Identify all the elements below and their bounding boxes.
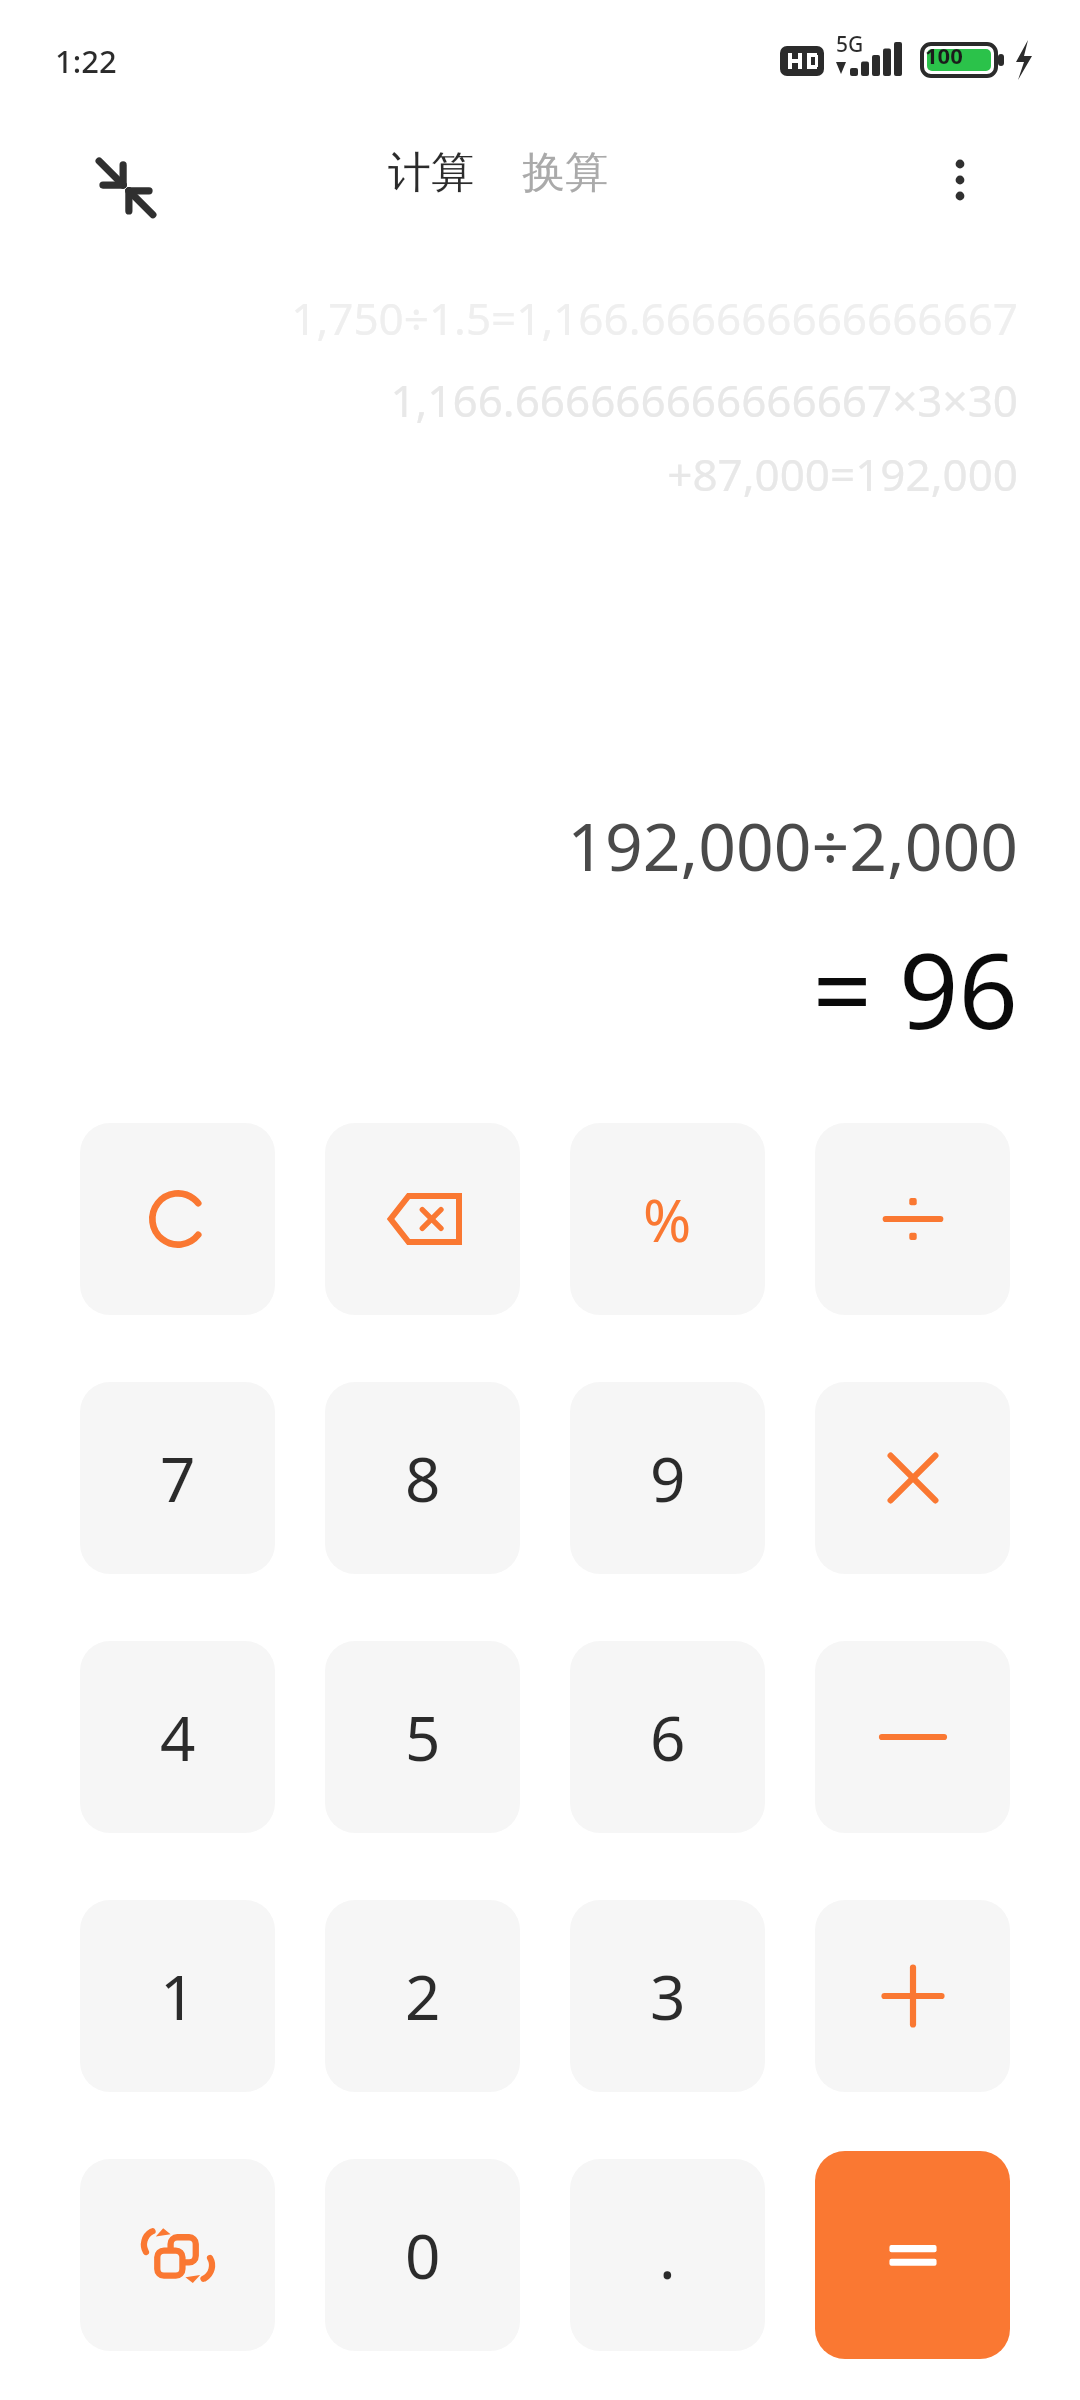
staticText: +87,000=192,000 <box>667 444 1018 504</box>
button[interactable]: 换算 <box>514 140 616 206</box>
button[interactable] <box>325 1123 520 1315</box>
staticText: 5G <box>836 30 864 59</box>
button[interactable]: Convert <box>80 2159 275 2351</box>
button[interactable]: 5 <box>325 1641 520 1833</box>
staticText: 7 <box>160 1436 196 1520</box>
staticText: 1:22 <box>55 40 117 82</box>
button[interactable]: 1 <box>80 1900 275 2092</box>
staticText: 8 <box>405 1436 441 1520</box>
button[interactable]: 4 <box>80 1641 275 1833</box>
staticText: 100 <box>925 40 963 70</box>
button[interactable]: More options <box>920 140 1000 220</box>
button[interactable]: Collapse <box>78 138 174 234</box>
staticText: % <box>643 1180 692 1259</box>
button[interactable]: 8 <box>325 1382 520 1574</box>
button[interactable] <box>815 1900 1010 2092</box>
button[interactable]: 计算 <box>380 140 482 206</box>
button[interactable]: . <box>570 2159 765 2351</box>
button[interactable]: 7 <box>80 1382 275 1574</box>
staticText: 1 <box>160 1954 196 2038</box>
staticText: 5 <box>405 1695 441 1779</box>
staticText: 1,166.666666666666667×3×30 <box>390 370 1018 430</box>
staticText: = 96 <box>812 918 1018 1060</box>
staticText: 0 <box>405 2213 441 2297</box>
button[interactable]: 2 <box>325 1900 520 2092</box>
button[interactable] <box>815 1382 1010 1574</box>
staticText: 换算 <box>522 146 608 200</box>
button[interactable] <box>815 1641 1010 1833</box>
button[interactable]: Equals <box>815 2151 1010 2359</box>
staticText: 192,000÷2,000 <box>567 800 1018 890</box>
staticText: 3 <box>650 1954 686 2038</box>
button[interactable]: % <box>570 1123 765 1315</box>
staticText: 4 <box>160 1695 196 1779</box>
staticText: 计算 <box>388 146 474 200</box>
staticText: 2 <box>405 1954 441 2038</box>
staticText: 1,750÷1.5=1,166.666666666666667 <box>291 288 1018 348</box>
staticText: 9 <box>650 1436 686 1520</box>
button[interactable]: 9 <box>570 1382 765 1574</box>
button[interactable] <box>815 1123 1010 1315</box>
button[interactable]: 0 <box>325 2159 520 2351</box>
staticText: 6 <box>650 1695 686 1779</box>
button[interactable] <box>80 1123 275 1315</box>
button[interactable]: 3 <box>570 1900 765 2092</box>
staticText: . <box>659 2213 676 2297</box>
button[interactable]: 6 <box>570 1641 765 1833</box>
